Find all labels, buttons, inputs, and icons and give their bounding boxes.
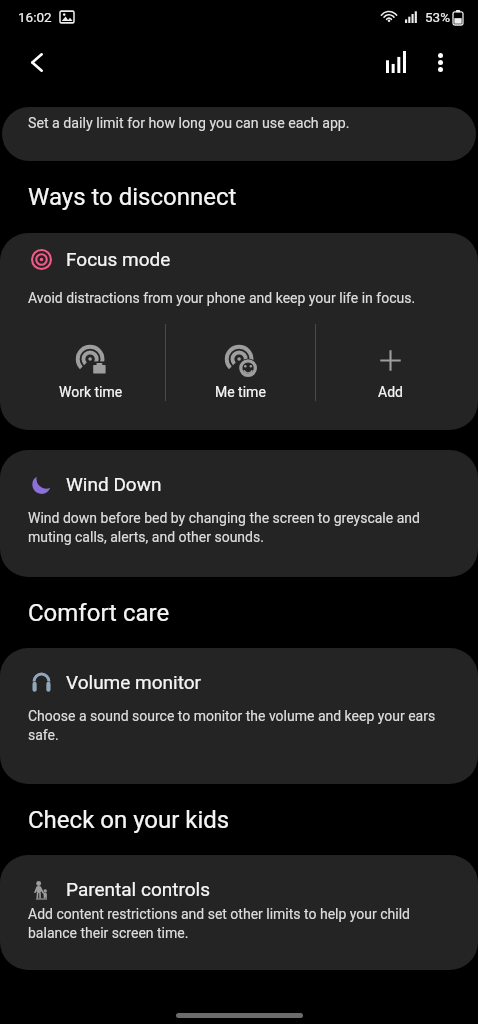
button[interactable]: Work time [17, 324, 165, 401]
button[interactable]: More options [418, 40, 462, 84]
staticText: Choose a sound source to monitor the vol… [28, 708, 450, 743]
staticText: Check on your kids [28, 806, 230, 834]
button[interactable]: Me time [166, 324, 315, 401]
staticText: Add [378, 384, 403, 400]
staticText: Parental controls [66, 878, 210, 900]
staticText: Me time [215, 384, 266, 400]
button[interactable]: Usage statistics [374, 40, 418, 84]
button[interactable]: Set a daily limit for how long you can u… [2, 107, 476, 161]
staticText: Set a daily limit for how long you can u… [28, 115, 350, 132]
button[interactable]: Volume monitor [0, 648, 478, 784]
button[interactable]: Back [15, 40, 59, 84]
staticText: Wind down before bed by changing the scr… [28, 510, 450, 545]
staticText: Focus mode [66, 248, 171, 270]
staticText: Avoid distractions from your phone and k… [28, 290, 416, 306]
button[interactable]: Add [316, 324, 465, 401]
button[interactable]: Wind Down [0, 450, 478, 577]
button[interactable]: Focus mode [0, 233, 478, 276]
staticText: Add content restrictions and set other l… [28, 906, 450, 941]
staticText: 53% [425, 9, 451, 25]
staticText: Ways to disconnect [28, 183, 237, 211]
staticText: 16:02 [18, 9, 52, 25]
staticText: Work time [59, 384, 123, 400]
staticText: Volume monitor [66, 671, 201, 693]
staticText: Wind Down [66, 473, 162, 495]
staticText: Comfort care [28, 599, 170, 627]
button[interactable]: Parental controls [0, 855, 478, 970]
